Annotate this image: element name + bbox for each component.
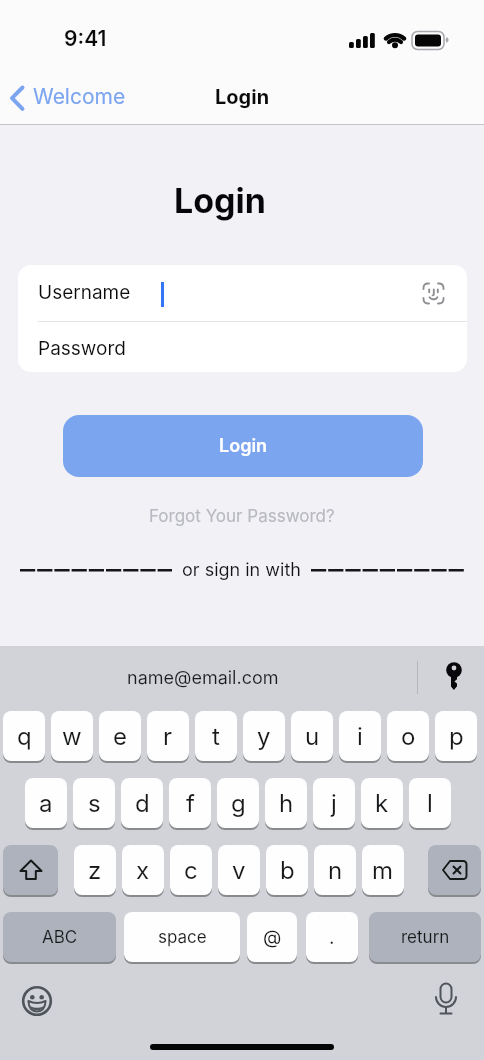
staticText: l xyxy=(427,789,433,818)
staticText: c xyxy=(184,856,198,885)
staticText: n xyxy=(328,856,343,885)
staticText: o xyxy=(401,722,416,751)
staticText: k xyxy=(375,789,389,818)
button[interactable]: . xyxy=(306,912,358,962)
staticText: s xyxy=(88,789,101,818)
button[interactable]: o xyxy=(387,711,429,761)
button[interactable]: h xyxy=(265,778,307,828)
button[interactable]: c xyxy=(170,845,212,895)
button[interactable]: a xyxy=(25,778,67,828)
staticText: Login xyxy=(215,85,270,109)
button[interactable] xyxy=(21,985,53,1017)
button[interactable]: t xyxy=(195,711,237,761)
staticText: i xyxy=(357,722,363,751)
staticText: Password xyxy=(38,337,126,360)
staticText: Login xyxy=(174,180,266,221)
staticText: space xyxy=(158,927,207,948)
staticText: ABC xyxy=(42,927,78,948)
button[interactable]: Username xyxy=(18,265,467,318)
button[interactable]: m xyxy=(362,845,404,895)
button[interactable]: @ xyxy=(247,912,297,962)
button[interactable]: j xyxy=(313,778,355,828)
button[interactable]: Password xyxy=(18,322,467,372)
staticText: Username xyxy=(38,281,131,304)
button[interactable] xyxy=(428,845,481,895)
staticText: h xyxy=(279,789,294,818)
staticText: 9:41 xyxy=(64,26,107,51)
button[interactable]: Forgot Your Password? xyxy=(0,505,484,527)
button[interactable]: p xyxy=(435,711,477,761)
staticText: b xyxy=(280,856,295,885)
button[interactable]: r xyxy=(147,711,189,761)
staticText: Forgot Your Password? xyxy=(149,506,335,527)
staticText: or sign in with xyxy=(182,559,301,581)
button[interactable]: return xyxy=(369,912,481,962)
staticText: . xyxy=(329,926,335,949)
button[interactable]: g xyxy=(217,778,259,828)
button[interactable]: n xyxy=(314,845,356,895)
staticText: m xyxy=(372,856,394,885)
staticText: j xyxy=(331,789,337,818)
button[interactable]: s xyxy=(73,778,115,828)
staticText: name@email.com xyxy=(127,667,279,689)
staticText: @ xyxy=(263,926,282,949)
staticText: v xyxy=(232,856,246,885)
button[interactable]: b xyxy=(266,845,308,895)
button[interactable]: f xyxy=(169,778,211,828)
staticText: p xyxy=(449,722,464,751)
staticText: x xyxy=(136,856,150,885)
button[interactable]: y xyxy=(243,711,285,761)
staticText: g xyxy=(231,789,246,818)
staticText: f xyxy=(186,789,195,818)
button[interactable]: l xyxy=(409,778,451,828)
staticText: r xyxy=(163,722,173,751)
staticText: w xyxy=(62,722,82,751)
button[interactable]: i xyxy=(339,711,381,761)
staticText: return xyxy=(401,927,450,948)
staticText: e xyxy=(113,722,127,751)
button[interactable]: x xyxy=(122,845,164,895)
staticText: q xyxy=(17,722,32,751)
button[interactable]: space xyxy=(124,912,240,962)
staticText: Welcome xyxy=(33,84,126,109)
staticText: Login xyxy=(219,435,268,457)
staticText: u xyxy=(305,722,320,751)
button[interactable]: v xyxy=(218,845,260,895)
button[interactable]: Login xyxy=(63,415,423,477)
button[interactable]: ABC xyxy=(3,912,116,962)
button[interactable]: q xyxy=(3,711,45,761)
button[interactable]: z xyxy=(74,845,116,895)
staticText: z xyxy=(88,856,102,885)
button[interactable]: e xyxy=(99,711,141,761)
button[interactable]: u xyxy=(291,711,333,761)
button[interactable]: k xyxy=(361,778,403,828)
button[interactable]: w xyxy=(51,711,93,761)
button[interactable] xyxy=(3,845,58,895)
staticText: y xyxy=(257,722,271,751)
button[interactable] xyxy=(431,982,461,1020)
button[interactable]: Welcome xyxy=(6,80,136,118)
button[interactable] xyxy=(443,661,465,694)
staticText: d xyxy=(135,789,150,818)
button[interactable]: name@email.com xyxy=(0,646,406,710)
button[interactable]: d xyxy=(121,778,163,828)
staticText: a xyxy=(39,789,53,818)
staticText: t xyxy=(212,722,220,751)
